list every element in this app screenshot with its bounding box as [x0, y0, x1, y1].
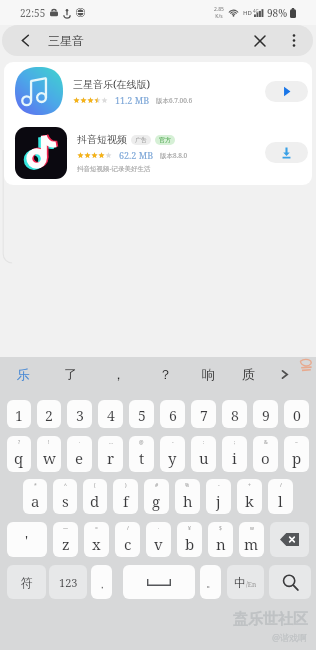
staticText: 3: [76, 406, 84, 425]
button[interactable]: Open app: [265, 81, 308, 102]
button[interactable]: Backspace: [270, 522, 309, 557]
staticText: 5: [138, 406, 146, 425]
staticText: w: [250, 525, 254, 532]
button[interactable]: ，: [91, 565, 112, 599]
button[interactable]: 响: [188, 357, 228, 391]
staticText: (: [94, 482, 96, 489]
staticText: 62.2 MB: [119, 149, 154, 161]
staticText: 7: [200, 406, 208, 425]
button[interactable]: ？: [143, 357, 188, 391]
button[interactable]: Switch language: [227, 565, 264, 599]
staticText: w: [43, 448, 56, 468]
button[interactable]: ~: [284, 436, 309, 472]
staticText: ^: [64, 482, 67, 489]
button[interactable]: ^: [53, 479, 77, 514]
staticText: z: [62, 534, 70, 554]
staticText: t: [139, 448, 145, 468]
staticText: m: [244, 534, 259, 554]
button[interactable]: 符: [7, 565, 46, 599]
button[interactable]: 。: [200, 565, 221, 599]
button[interactable]: !: [37, 436, 61, 472]
button[interactable]: 了: [47, 357, 94, 391]
staticText: 1: [15, 406, 23, 425]
staticText: 0: [293, 406, 301, 425]
button[interactable]: 7: [191, 400, 216, 428]
staticText: /: [127, 525, 129, 532]
staticText: o: [261, 448, 270, 468]
staticText: #: [155, 482, 159, 489]
button[interactable]: *: [23, 479, 47, 514]
button[interactable]: ': [7, 522, 47, 557]
button[interactable]: Search: [269, 565, 311, 599]
button[interactable]: +: [237, 479, 262, 514]
button[interactable]: 0: [284, 400, 309, 428]
button[interactable]: —: [53, 522, 78, 557]
button[interactable]: w: [239, 522, 264, 557]
button[interactable]: 9: [253, 400, 278, 428]
button[interactable]: &: [253, 436, 278, 472]
staticText: u: [199, 448, 209, 468]
button[interactable]: ，: [95, 357, 142, 391]
staticText: $: [219, 525, 222, 532]
button[interactable]: 6: [160, 400, 185, 428]
button[interactable]: ?: [7, 436, 31, 472]
button[interactable]: Back: [2, 25, 48, 56]
staticText: b: [185, 534, 195, 554]
button[interactable]: 1: [7, 400, 31, 428]
staticText: 响: [202, 366, 215, 382]
button[interactable]: %: [175, 479, 200, 514]
staticText: s: [62, 491, 69, 511]
button[interactable]: Clear search: [244, 25, 275, 56]
button[interactable]: 5: [129, 400, 154, 428]
staticText: %: [185, 482, 190, 489]
staticText: 4G: [253, 8, 259, 14]
button[interactable]: -: [160, 436, 185, 472]
button[interactable]: 乐: [0, 357, 47, 391]
button[interactable]: 2: [37, 400, 61, 428]
button[interactable]: ·: [67, 436, 92, 472]
button[interactable]: /: [268, 479, 293, 514]
staticText: n: [216, 534, 226, 554]
button[interactable]: (: [83, 479, 107, 514]
button[interactable]: More options: [275, 25, 313, 56]
button[interactable]: -: [206, 479, 231, 514]
staticText: 符: [21, 575, 33, 590]
staticText: -: [172, 439, 174, 446]
staticText: d: [90, 491, 100, 511]
staticText: —: [63, 525, 69, 532]
button[interactable]: ): [113, 479, 138, 514]
button[interactable]: 123: [49, 565, 87, 599]
staticText: ·: [158, 525, 160, 532]
button[interactable]: :: [191, 436, 216, 472]
staticText: 抖音短视频: [77, 133, 127, 146]
staticText: a: [31, 491, 40, 511]
staticText: 22:55: [20, 6, 46, 20]
staticText: 版本8.8.0: [160, 151, 188, 160]
staticText: +: [248, 482, 251, 489]
staticText: 盍乐世社区: [233, 610, 308, 629]
staticText: -: [218, 482, 220, 489]
button[interactable]: ¥: [177, 522, 202, 557]
button[interactable]: 3: [67, 400, 92, 428]
button[interactable]: $: [208, 522, 233, 557]
button[interactable]: ·: [146, 522, 171, 557]
button[interactable]: #: [144, 479, 169, 514]
button[interactable]: Download app: [265, 142, 308, 163]
button[interactable]: …: [98, 436, 123, 472]
button[interactable]: 抖音短视频: [4, 120, 312, 185]
staticText: =: [95, 525, 98, 532]
button[interactable]: =: [84, 522, 109, 557]
button[interactable]: @: [129, 436, 154, 472]
button[interactable]: Space: [123, 565, 195, 599]
button[interactable]: 8: [222, 400, 247, 428]
button[interactable]: More candidates: [268, 357, 300, 391]
staticText: h: [183, 491, 193, 511]
staticText: 2.85: [214, 6, 224, 13]
button[interactable]: ;: [222, 436, 247, 472]
button[interactable]: 4: [98, 400, 123, 428]
button[interactable]: 三星音乐(在线版): [4, 62, 312, 120]
button[interactable]: /: [115, 522, 140, 557]
staticText: q: [14, 448, 24, 468]
staticText: 广告: [135, 136, 147, 144]
button[interactable]: 质: [228, 357, 268, 391]
